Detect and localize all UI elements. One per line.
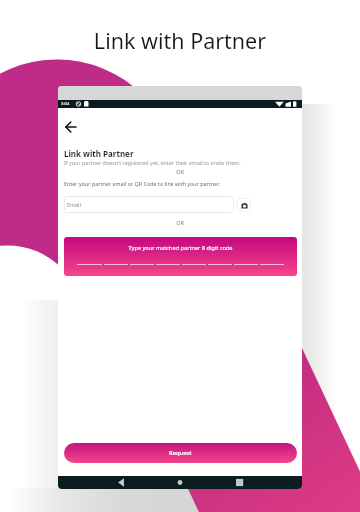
staticText: Enter your partner email or QR Code to l…: [64, 180, 220, 187]
button[interactable]: Type your matched partner 8 digit code: [64, 237, 297, 276]
staticText: Email: [67, 201, 81, 208]
button[interactable]: Email: [64, 196, 234, 213]
staticText: 3:04: [61, 101, 70, 107]
staticText: Request: [169, 449, 192, 457]
staticText: Type your matched partner 8 digit code: [64, 244, 297, 252]
staticText: OR: [58, 168, 302, 175]
staticText: Link with Partner: [0, 26, 360, 55]
button[interactable]: Request: [64, 443, 297, 463]
staticText: OR: [58, 219, 302, 226]
staticText: Link with Partner: [64, 148, 134, 159]
button[interactable]: Back: [63, 120, 77, 133]
staticText: If your partner doesn't registered yet, …: [64, 159, 241, 166]
button[interactable]: Scan QR code: [237, 198, 251, 212]
